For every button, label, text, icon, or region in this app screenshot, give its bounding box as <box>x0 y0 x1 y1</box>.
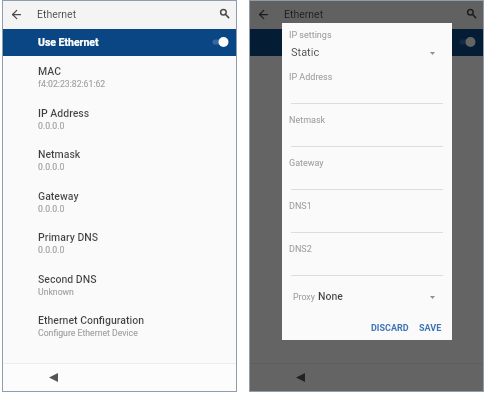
staticText: Ethernet Configuration <box>38 314 144 326</box>
button[interactable]: Second DNS <box>249 264 484 305</box>
button[interactable]: IP Address <box>2 98 237 139</box>
staticText: Configure Ethernet Device <box>38 328 138 338</box>
staticText: Configure Ethernet Device <box>285 328 385 338</box>
button[interactable]: Search <box>463 5 480 22</box>
button[interactable]: MAC <box>2 56 237 97</box>
button[interactable]: Gateway <box>282 157 452 200</box>
staticText: Gateway <box>38 190 79 202</box>
button[interactable]: Gateway <box>249 181 484 222</box>
staticText: Ethernet Configuration <box>285 314 391 326</box>
staticText: 0.0.0.0 <box>285 121 312 131</box>
button[interactable]: Static <box>282 45 452 63</box>
staticText: SAVE <box>419 323 442 334</box>
staticText: f4:02:23:82:61:62 <box>38 79 106 89</box>
staticText: Static <box>291 46 320 59</box>
staticText: Use Ethernet <box>38 36 99 48</box>
button[interactable]: Netmask <box>282 114 452 157</box>
button[interactable]: DISCARD <box>367 319 413 337</box>
button[interactable]: Proxy <box>282 287 452 309</box>
button[interactable]: Back <box>291 368 309 386</box>
staticText: DNS2 <box>289 244 312 255</box>
button[interactable]: IP Address <box>249 98 484 139</box>
button[interactable]: Back <box>44 368 62 386</box>
staticText: Netmask <box>38 148 81 160</box>
staticText: Gateway <box>289 158 324 169</box>
staticText: Netmask <box>285 148 328 160</box>
button[interactable]: DNS2 <box>282 243 452 286</box>
button[interactable]: Netmask <box>2 139 237 180</box>
button[interactable]: Ethernet Configuration <box>2 305 237 346</box>
button[interactable]: Back <box>8 6 25 23</box>
staticText: 0.0.0.0 <box>38 204 65 214</box>
staticText: f4:02:23:82:61:62 <box>285 79 353 89</box>
button[interactable]: DNS1 <box>282 200 452 243</box>
staticText: 0.0.0.0 <box>38 245 65 255</box>
staticText: DNS1 <box>289 201 312 212</box>
staticText: IP settings <box>289 30 332 41</box>
staticText: 0.0.0.0 <box>285 204 312 214</box>
staticText: Unknown <box>285 287 321 297</box>
staticText: Unknown <box>38 287 74 297</box>
staticText: None <box>318 290 343 302</box>
staticText: Second DNS <box>38 273 97 285</box>
button[interactable]: Use Ethernet <box>2 29 237 56</box>
staticText: 0.0.0.0 <box>38 121 65 131</box>
staticText: Second DNS <box>285 273 344 285</box>
staticText: Use Ethernet <box>285 36 346 48</box>
staticText: Ethernet <box>284 8 324 20</box>
staticText: IP Address <box>38 107 90 119</box>
staticText: 0.0.0.0 <box>285 162 312 172</box>
staticText: IP Address <box>289 72 333 83</box>
staticText: MAC <box>285 65 309 77</box>
staticText: IP Address <box>285 107 337 119</box>
button[interactable]: SAVE <box>415 319 446 337</box>
staticText: 0.0.0.0 <box>285 245 312 255</box>
button[interactable]: Primary DNS <box>249 222 484 263</box>
staticText: 0.0.0.0 <box>38 162 65 172</box>
staticText: Proxy <box>293 292 315 302</box>
staticText: MAC <box>38 65 62 77</box>
button[interactable]: MAC <box>249 56 484 97</box>
button[interactable]: Gateway <box>2 181 237 222</box>
button[interactable]: Back <box>255 6 272 23</box>
staticText: Primary DNS <box>285 231 346 243</box>
staticText: Ethernet <box>37 8 77 20</box>
button[interactable]: Ethernet Configuration <box>249 305 484 346</box>
button[interactable]: IP Address <box>282 71 452 114</box>
button[interactable]: Second DNS <box>2 264 237 305</box>
staticText: Primary DNS <box>38 231 99 243</box>
staticText: Netmask <box>289 115 326 126</box>
button[interactable]: Netmask <box>249 139 484 180</box>
button[interactable]: Search <box>216 5 233 22</box>
button[interactable]: Primary DNS <box>2 222 237 263</box>
staticText: DISCARD <box>371 323 409 334</box>
button[interactable]: Use Ethernet <box>249 29 484 56</box>
